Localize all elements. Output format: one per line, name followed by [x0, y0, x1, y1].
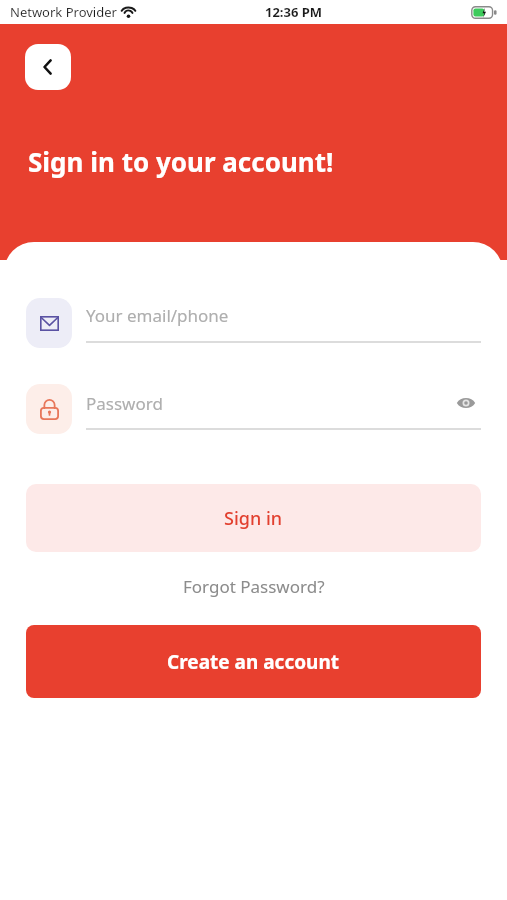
staticText: Sign in to your account!: [28, 144, 334, 179]
button[interactable]: Back: [25, 44, 71, 90]
staticText: Forgot Password?: [183, 575, 325, 598]
button[interactable]: Show password: [451, 388, 481, 418]
staticText: Sign in: [224, 506, 283, 531]
button[interactable]: Your email/phone: [26, 298, 481, 348]
button[interactable]: Create an account: [26, 625, 481, 698]
staticText: Your email/phone: [86, 304, 229, 327]
button[interactable]: Sign in: [26, 484, 481, 552]
staticText: Network Provider: [10, 3, 117, 21]
button[interactable]: Forgot Password?: [173, 570, 335, 603]
staticText: Create an account: [167, 649, 340, 675]
staticText: Password: [86, 392, 163, 415]
button[interactable]: Password: [26, 384, 481, 434]
staticText: 12:36 PM: [265, 3, 323, 21]
